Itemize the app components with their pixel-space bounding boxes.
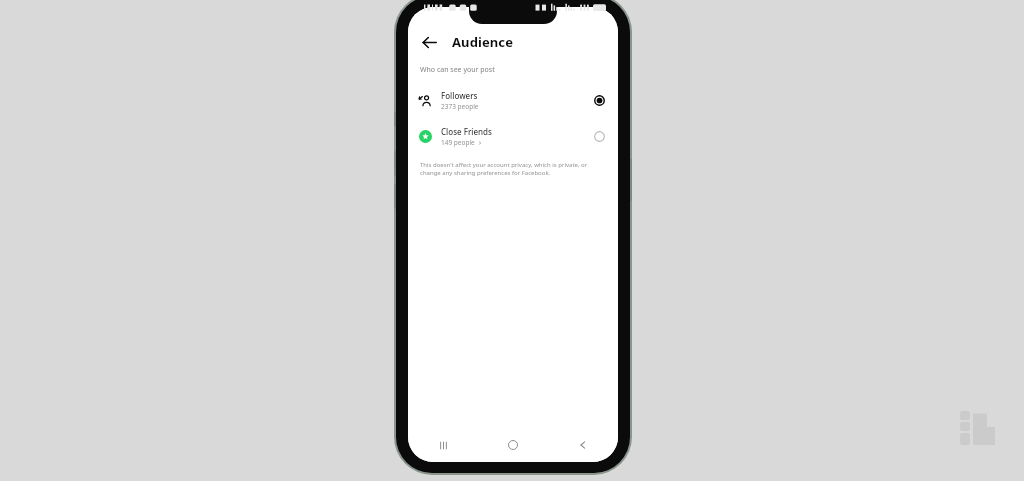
button[interactable]: Followers selected [590,91,608,109]
button[interactable]: Back [414,27,444,57]
staticText: Who can see your post [420,65,495,75]
staticText: Followers [441,90,478,101]
staticText: Audience [452,33,514,51]
button[interactable]: Home [478,432,548,458]
staticText: Close Friends [441,126,492,137]
button[interactable]: Select Close Friends [590,127,608,145]
staticText: This doesn't affect your account privacy… [420,161,588,177]
button[interactable]: Followers [408,87,618,113]
button[interactable]: Close Friends [408,123,618,149]
staticText: 2373 people [441,102,479,111]
button[interactable]: Recent apps [408,432,478,458]
staticText: 149 people [441,138,475,147]
button[interactable]: Back [548,432,618,458]
